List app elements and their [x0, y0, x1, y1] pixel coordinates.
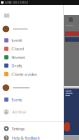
staticText: Settings [12, 126, 25, 131]
button[interactable]: Events [0, 37, 63, 44]
button[interactable]: Clients a video [0, 71, 63, 78]
staticText: Events [11, 97, 22, 102]
staticText: Drafts [11, 63, 22, 68]
staticText: Gmail screenshot [5, 1, 28, 4]
staticText: Closed [11, 46, 23, 51]
button[interactable]: ? [0, 134, 63, 140]
button[interactable]: Drafts [0, 62, 63, 69]
staticText: Events [11, 38, 22, 43]
button[interactable]: Reviews [0, 54, 63, 61]
button[interactable]: Settings [0, 125, 63, 132]
button[interactable] [0, 25, 63, 32]
staticText: Reviews [11, 55, 25, 60]
button[interactable]: Closed [0, 45, 63, 52]
button[interactable] [0, 84, 63, 91]
staticText: Help & feedback [12, 135, 40, 140]
button[interactable]: Events [0, 96, 63, 103]
staticText: All Mail [12, 109, 26, 114]
button[interactable]: All Mail [0, 108, 63, 115]
staticText: Clients a video [11, 71, 36, 77]
staticText: Gmail screenshot [5, 1, 28, 4]
staticText: ? [5, 135, 7, 140]
